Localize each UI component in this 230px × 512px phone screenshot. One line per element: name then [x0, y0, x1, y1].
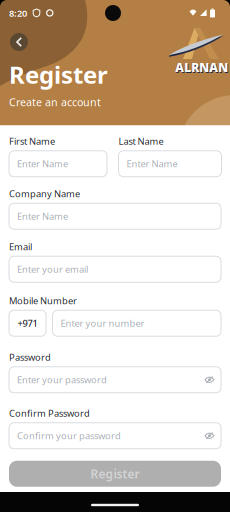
- staticText: Mobile Number: [9, 295, 77, 307]
- button[interactable]: [205, 376, 214, 383]
- staticText: Confirm your password: [17, 430, 121, 442]
- staticText: ALRNAN: [175, 59, 228, 75]
- staticText: Enter your email: [17, 263, 88, 275]
- staticText: Enter Name: [126, 158, 177, 170]
- staticText: Last Name: [118, 135, 163, 147]
- button[interactable]: [205, 432, 214, 439]
- staticText: Create an account: [9, 95, 101, 109]
- button[interactable]: Register: [9, 461, 221, 487]
- button[interactable]: [10, 33, 28, 51]
- staticText: Register: [90, 466, 139, 482]
- staticText: Register: [9, 58, 108, 90]
- staticText: Company Name: [9, 188, 80, 200]
- staticText: ALRNAN: [176, 60, 229, 76]
- staticText: Enter your number: [60, 317, 144, 329]
- staticText: Email: [9, 241, 32, 253]
- staticText: First Name: [9, 135, 55, 147]
- staticText: 8:20: [9, 7, 27, 19]
- staticText: +971: [17, 317, 37, 329]
- staticText: Enter Name: [17, 210, 68, 222]
- staticText: Enter your password: [17, 374, 107, 386]
- staticText: Confirm Password: [9, 407, 90, 419]
- staticText: Enter Name: [17, 158, 68, 170]
- staticText: Password: [9, 351, 51, 363]
